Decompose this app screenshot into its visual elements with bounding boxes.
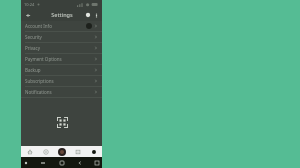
staticText: Settings bbox=[51, 11, 73, 18]
staticText: Account Info bbox=[25, 23, 52, 29]
button[interactable]: Back bbox=[77, 160, 82, 165]
staticText: Subscriptions bbox=[25, 78, 54, 84]
staticText: 10:24 bbox=[24, 2, 35, 7]
button[interactable]: Backup bbox=[21, 65, 102, 75]
staticText: Security bbox=[25, 34, 42, 40]
button[interactable]: Home bbox=[59, 160, 64, 165]
button[interactable]: Notifications bbox=[21, 87, 102, 97]
button[interactable]: More options bbox=[92, 11, 100, 19]
button[interactable]: Home bbox=[21, 146, 38, 157]
button[interactable]: Profile bbox=[54, 146, 70, 157]
button[interactable]: Back bbox=[23, 10, 33, 20]
button[interactable]: Payment Options bbox=[21, 54, 102, 64]
button[interactable]: Scan QR code bbox=[55, 115, 69, 129]
staticText: Payment Options bbox=[25, 56, 62, 62]
button[interactable]: Security bbox=[21, 32, 102, 42]
button[interactable]: Activity bbox=[70, 146, 86, 157]
button[interactable]: Settings bbox=[86, 146, 102, 157]
button[interactable]: Account Info bbox=[21, 21, 102, 31]
button[interactable]: Search bbox=[83, 10, 92, 19]
button[interactable]: Privacy bbox=[21, 43, 102, 53]
staticText: Notifications bbox=[25, 89, 52, 95]
button[interactable]: Subscriptions bbox=[21, 76, 102, 86]
button[interactable]: Explore bbox=[38, 146, 54, 157]
staticText: Backup bbox=[25, 67, 41, 73]
staticText: Privacy bbox=[25, 45, 41, 51]
